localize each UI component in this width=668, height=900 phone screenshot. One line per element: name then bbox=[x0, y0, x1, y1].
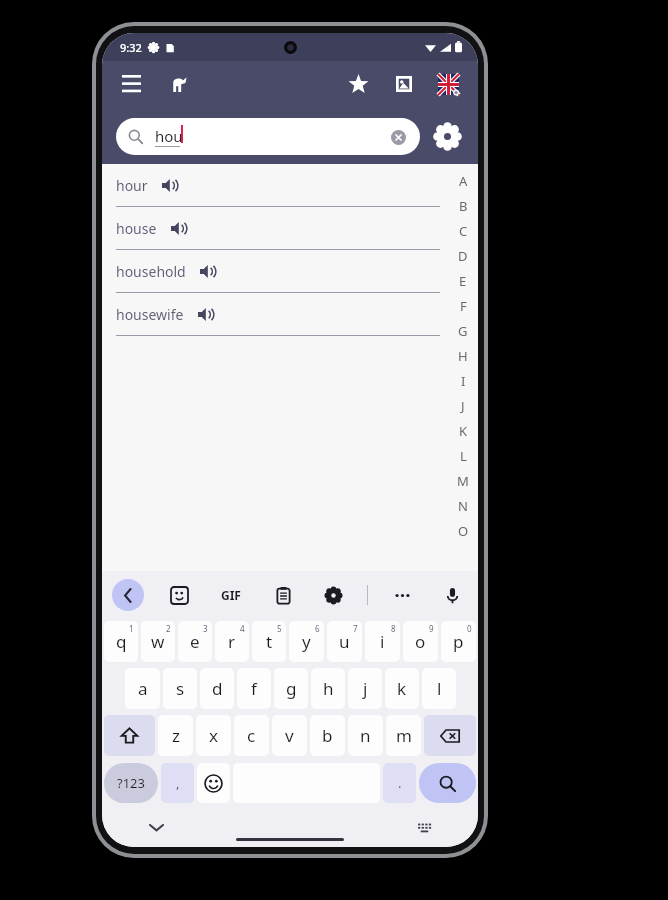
staticText: 5 bbox=[277, 623, 282, 634]
staticText: J bbox=[461, 397, 465, 415]
button[interactable]: m bbox=[386, 715, 421, 756]
staticText: w bbox=[151, 630, 165, 653]
staticText: m bbox=[396, 724, 412, 747]
button[interactable]: Image bbox=[384, 64, 424, 104]
button[interactable]: Emoji bbox=[197, 763, 230, 803]
button[interactable]: O bbox=[448, 518, 478, 543]
staticText: A bbox=[459, 172, 468, 190]
button[interactable]: F bbox=[448, 293, 478, 318]
button[interactable]: z bbox=[158, 715, 193, 756]
button[interactable]: K bbox=[448, 418, 478, 443]
staticText: k bbox=[397, 677, 407, 700]
button[interactable]: y bbox=[289, 621, 324, 662]
button[interactable]: J bbox=[448, 393, 478, 418]
button[interactable]: Hide keyboard bbox=[144, 815, 168, 839]
button[interactable]: Voice input bbox=[436, 579, 468, 611]
button[interactable]: h bbox=[311, 668, 345, 709]
button[interactable]: u bbox=[327, 621, 362, 662]
button[interactable]: Back bbox=[112, 579, 144, 611]
button[interactable]: household bbox=[116, 250, 440, 293]
staticText: hour bbox=[116, 176, 148, 195]
staticText: b bbox=[322, 724, 333, 747]
button[interactable]: A bbox=[448, 168, 478, 193]
staticText: y bbox=[302, 630, 311, 653]
button[interactable]: k bbox=[385, 668, 419, 709]
button[interactable]: E bbox=[448, 268, 478, 293]
staticText: u bbox=[339, 630, 350, 653]
button[interactable]: More bbox=[386, 579, 418, 611]
staticText: j bbox=[363, 677, 368, 700]
button[interactable]: s bbox=[163, 668, 197, 709]
button[interactable]: M bbox=[448, 468, 478, 493]
button[interactable]: Pronounce housewife bbox=[194, 303, 216, 325]
button[interactable]: Stickers bbox=[163, 579, 195, 611]
staticText: C bbox=[459, 222, 468, 240]
button[interactable]: I bbox=[448, 368, 478, 393]
button[interactable]: Pronounce household bbox=[196, 260, 218, 282]
button[interactable]: Menu bbox=[112, 65, 150, 103]
button[interactable]: Settings bbox=[428, 117, 466, 155]
button[interactable]: hour bbox=[116, 164, 440, 207]
button[interactable]: c bbox=[234, 715, 269, 756]
button[interactable]: house bbox=[116, 207, 440, 250]
button[interactable]: n bbox=[348, 715, 383, 756]
button[interactable]: p bbox=[441, 621, 476, 662]
button[interactable]: H bbox=[448, 343, 478, 368]
button[interactable]: i bbox=[365, 621, 400, 662]
button[interactable]: l bbox=[422, 668, 456, 709]
button[interactable]: v bbox=[272, 715, 307, 756]
staticText: housewife bbox=[116, 305, 184, 324]
button[interactable]: G bbox=[448, 318, 478, 343]
button[interactable]: t bbox=[252, 621, 286, 662]
staticText: GIF bbox=[221, 587, 241, 603]
staticText: o bbox=[415, 630, 426, 653]
button[interactable]: C bbox=[448, 218, 478, 243]
staticText: L bbox=[460, 447, 467, 465]
button[interactable]: o bbox=[403, 621, 438, 662]
button[interactable]: Search bbox=[419, 763, 476, 803]
button[interactable]: g bbox=[274, 668, 308, 709]
button[interactable]: Backspace bbox=[424, 715, 476, 756]
button[interactable]: L bbox=[448, 443, 478, 468]
button[interactable]: Language bbox=[428, 64, 468, 104]
button[interactable]: B bbox=[448, 193, 478, 218]
staticText: p bbox=[453, 630, 464, 653]
button[interactable]: Pronounce house bbox=[167, 217, 189, 239]
button[interactable]: History bbox=[160, 65, 198, 103]
button[interactable]: . bbox=[383, 763, 416, 803]
button[interactable]: e bbox=[178, 621, 212, 662]
staticText: house bbox=[116, 219, 157, 238]
button[interactable]: Clipboard bbox=[267, 579, 299, 611]
button[interactable]: a bbox=[125, 668, 160, 709]
button[interactable]: Pronounce hour bbox=[158, 174, 180, 196]
button[interactable]: Switch keyboard bbox=[412, 815, 436, 839]
button[interactable]: D bbox=[448, 243, 478, 268]
button[interactable]: d bbox=[200, 668, 234, 709]
button[interactable]: q bbox=[104, 621, 138, 662]
button[interactable]: Clear bbox=[388, 127, 408, 147]
button[interactable]: GIF bbox=[213, 577, 249, 613]
button[interactable]: ?123 bbox=[104, 763, 158, 803]
button[interactable]: , bbox=[161, 763, 194, 803]
button[interactable]: w bbox=[141, 621, 175, 662]
button[interactable]: j bbox=[348, 668, 382, 709]
button[interactable]: Shift bbox=[104, 715, 155, 756]
button[interactable]: Keyboard settings bbox=[317, 579, 349, 611]
staticText: t bbox=[266, 630, 273, 653]
button[interactable]: housewife bbox=[116, 293, 440, 336]
button[interactable]: N bbox=[448, 493, 478, 518]
button[interactable]: Favorites bbox=[338, 64, 378, 104]
staticText: q bbox=[116, 630, 127, 653]
button[interactable]: hou bbox=[116, 118, 420, 155]
button[interactable]: x bbox=[196, 715, 231, 756]
staticText: a bbox=[138, 677, 148, 700]
staticText: d bbox=[212, 677, 223, 700]
button[interactable]: f bbox=[237, 668, 271, 709]
button[interactable]: r bbox=[215, 621, 249, 662]
staticText: f bbox=[251, 677, 257, 700]
button[interactable]: b bbox=[310, 715, 345, 756]
staticText: , bbox=[176, 774, 180, 792]
staticText: x bbox=[209, 724, 218, 747]
staticText: household bbox=[116, 262, 186, 281]
